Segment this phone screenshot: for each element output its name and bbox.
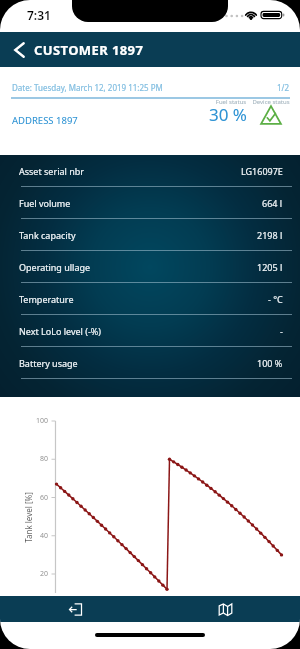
staticText: 100 bbox=[28, 416, 48, 426]
staticText: Fuel volume bbox=[19, 197, 71, 209]
button[interactable]: Map bbox=[150, 596, 300, 622]
button[interactable]: Next LoLo level (-%) bbox=[0, 315, 300, 347]
staticText: Device status bbox=[250, 98, 292, 106]
staticText: - bbox=[280, 325, 283, 337]
button[interactable]: Back bbox=[0, 32, 34, 67]
staticText: 30 % bbox=[209, 103, 247, 126]
staticText: Date: Tuesday, March 12, 2019 11:25 PM bbox=[12, 82, 163, 93]
staticText: ADDRESS 1897 bbox=[12, 114, 78, 127]
staticText: 40 bbox=[28, 531, 48, 541]
staticText: 80 bbox=[28, 454, 48, 464]
staticText: 1205 l bbox=[257, 261, 283, 273]
staticText: 2198 l bbox=[257, 229, 283, 241]
staticText: LG16097E bbox=[241, 165, 283, 177]
staticText: 60 bbox=[28, 493, 48, 503]
staticText: CUSTOMER 1897 bbox=[34, 41, 144, 59]
staticText: Tank capacity bbox=[19, 229, 76, 241]
button[interactable]: Tank capacity bbox=[0, 219, 300, 251]
staticText: Next LoLo level (-%) bbox=[19, 325, 102, 337]
staticText: 100 % bbox=[257, 357, 283, 369]
button[interactable]: Logout bbox=[0, 596, 150, 622]
staticText: Asset serial nbr bbox=[19, 165, 84, 177]
staticText: 664 l bbox=[262, 197, 283, 209]
staticText: Temperature bbox=[19, 293, 74, 305]
staticText: 7:31 bbox=[27, 7, 51, 23]
staticText: - °C bbox=[268, 293, 283, 305]
staticText: 1/2 bbox=[277, 82, 290, 93]
staticText: Battery usage bbox=[19, 357, 78, 369]
staticText: Operating ullage bbox=[19, 261, 91, 273]
staticText: 20 bbox=[28, 569, 48, 579]
button[interactable]: Temperature bbox=[0, 283, 300, 315]
button[interactable]: Asset serial nbr bbox=[0, 155, 300, 187]
staticText: Fuel status bbox=[213, 98, 249, 106]
button[interactable]: Operating ullage bbox=[0, 251, 300, 283]
staticText: Tank level [%] bbox=[22, 485, 33, 549]
button[interactable]: Battery usage bbox=[0, 347, 300, 379]
button[interactable]: Fuel volume bbox=[0, 187, 300, 219]
